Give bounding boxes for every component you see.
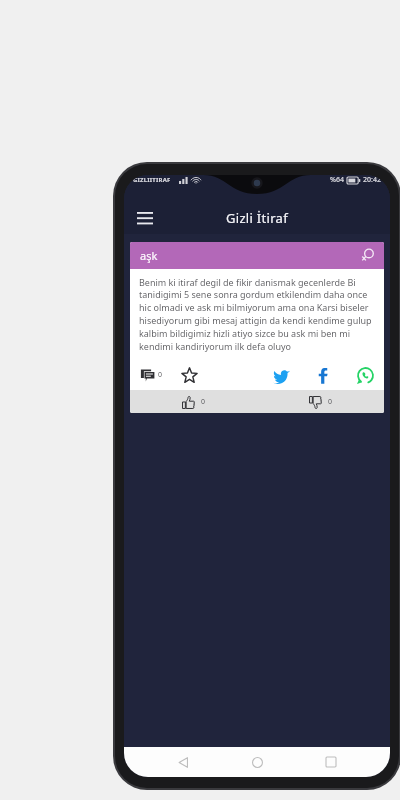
button[interactable]: Share on Facebook	[313, 365, 333, 385]
button[interactable]: Home	[242, 747, 272, 777]
staticText: aşk	[140, 248, 158, 263]
other: Female	[358, 246, 378, 266]
staticText: Gizli İtiraf	[226, 209, 288, 227]
button[interactable]: Recent apps	[316, 747, 346, 777]
button[interactable]: Share on Twitter	[271, 365, 291, 385]
button[interactable]: Favorite	[179, 365, 199, 385]
staticText: %64	[330, 175, 344, 185]
staticText: Benim ki itiraf degil de fikir danismak …	[139, 276, 375, 353]
button[interactable]: Back	[168, 747, 198, 777]
staticText: 0	[201, 397, 206, 407]
button[interactable]: 0	[137, 367, 165, 383]
button[interactable]: 0	[130, 395, 257, 409]
button[interactable]: 0	[257, 395, 384, 409]
staticText: GIZLIITIRAF	[133, 176, 171, 184]
button[interactable]: aşk	[130, 242, 384, 269]
staticText: 0	[158, 370, 163, 380]
button[interactable]: Open navigation menu	[132, 205, 158, 231]
staticText: 0	[328, 397, 333, 407]
staticText: 20:42	[363, 175, 381, 185]
button[interactable]: Share on WhatsApp	[355, 365, 375, 385]
